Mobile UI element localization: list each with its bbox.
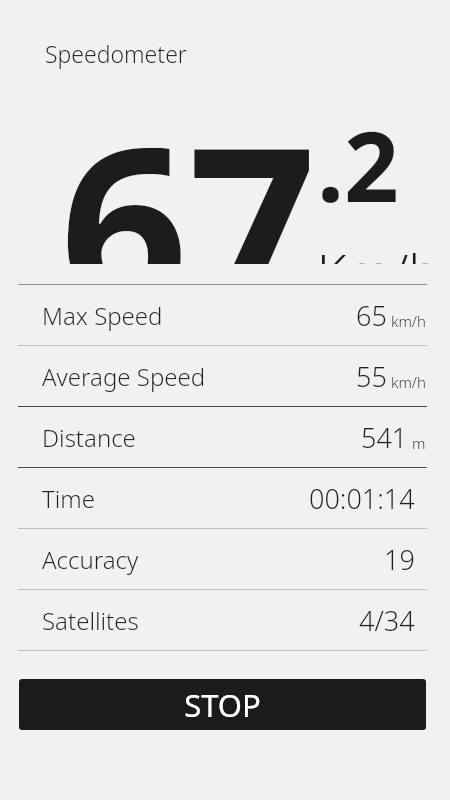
staticText: 00:01:14 (309, 480, 415, 517)
staticText: Accuracy (42, 543, 139, 576)
button[interactable]: Distance (0, 407, 450, 467)
staticText: Average Speed (42, 360, 206, 393)
staticText: 4/34 (359, 602, 415, 639)
staticText: m (412, 433, 426, 453)
staticText: Distance (42, 421, 136, 454)
button[interactable]: Satellites (0, 590, 450, 650)
button[interactable]: Time (0, 468, 450, 528)
staticText: Speedometer (45, 38, 187, 69)
staticText: Max Speed (42, 299, 163, 332)
staticText: Km/h (317, 238, 439, 264)
staticText: 541 (361, 419, 408, 456)
staticText: Satellites (42, 604, 139, 637)
staticText: 19 (384, 541, 415, 578)
button[interactable]: Average Speed (0, 346, 450, 406)
staticText: 55 (356, 358, 387, 395)
staticText: .2 (317, 99, 399, 230)
button[interactable]: STOP (19, 679, 426, 730)
staticText: Time (42, 482, 95, 515)
staticText: STOP (184, 684, 261, 726)
staticText: km/h (391, 311, 426, 331)
staticText: 65 (356, 297, 387, 334)
staticText: 67 (60, 71, 317, 264)
button[interactable]: Accuracy (0, 529, 450, 589)
staticText: km/h (391, 372, 426, 392)
button[interactable]: Max Speed (0, 285, 450, 345)
